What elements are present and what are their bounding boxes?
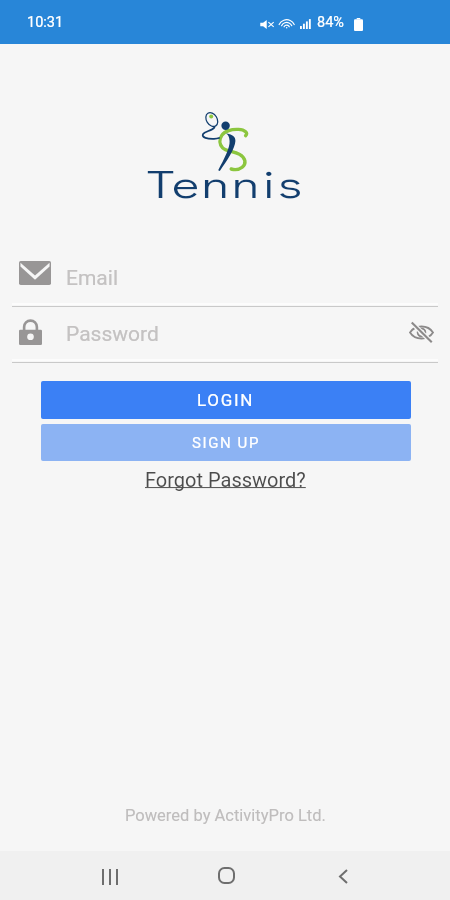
staticText: Powered by ActivityPro Ltd. <box>125 806 326 825</box>
staticText: Password <box>66 322 159 347</box>
staticText: 84% <box>317 14 344 31</box>
button[interactable]: Forgot Password? <box>140 466 310 492</box>
staticText: Email <box>66 266 118 291</box>
staticText: Forgot Password? <box>145 468 306 491</box>
button[interactable]: LOGIN <box>41 381 411 419</box>
button[interactable]: Recent apps <box>79 852 140 900</box>
staticText: LOGIN <box>197 390 255 410</box>
staticText: Tennis <box>147 157 306 208</box>
button[interactable]: SIGN UP <box>41 424 411 461</box>
button[interactable]: Show password <box>399 310 443 354</box>
button[interactable]: Back <box>313 852 374 900</box>
button[interactable]: Home <box>196 851 257 900</box>
staticText: SIGN UP <box>192 434 261 452</box>
staticText: 10:31 <box>27 14 64 31</box>
